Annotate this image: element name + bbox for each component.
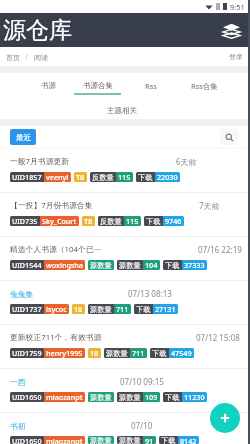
staticText: 07/12 15:08 [196,332,240,343]
staticText: UID1737 [12,304,42,314]
staticText: 47549 [171,348,192,358]
staticText: UID1650 [12,436,42,444]
staticText: 登录 [229,52,243,61]
staticText: 下载 [161,436,176,444]
staticText: 18 [90,348,99,358]
staticText: 源数量 [119,436,141,444]
staticText: 主题相关 [107,106,137,115]
staticText: 37333 [184,260,205,270]
button[interactable]: 书源 [22,73,74,98]
staticText: 更新校正711个，有效书源 [10,332,102,343]
staticText: 下载 [146,217,161,226]
staticText: 18 [74,304,83,314]
staticText: 阅读 [34,53,48,62]
staticText: UID1857 [12,172,42,182]
staticText: woxingsha [46,260,83,270]
button[interactable]: 【一投】7月份书源合集 [0,193,250,236]
staticText: 9:51 [230,2,245,12]
button[interactable]: 一般7月书源更新 [0,149,250,192]
staticText: 书初 [10,421,26,431]
staticText: T8 [76,172,85,182]
staticText: 下载 [152,349,167,358]
staticText: 115 [118,172,131,182]
staticText: 源数量 [90,305,112,314]
staticText: / [20,52,34,62]
staticText: UID1544 [12,260,42,270]
button[interactable]: 最近 [10,129,36,145]
staticText: 9746 [165,216,182,226]
staticText: 最近 [16,133,31,142]
button[interactable]: 更新校正711个，有效书源 [0,325,250,368]
staticText: 【一投】7月份书源合集 [10,200,93,211]
button[interactable]: Rss [125,73,177,98]
staticText: 下载 [138,173,153,182]
button[interactable]: Add [210,403,240,433]
button[interactable]: 一西 [0,369,250,412]
staticText: 兔兔集 [10,289,34,299]
staticText: 源数量 [90,261,112,270]
staticText: 07/16 22:19 [198,244,242,255]
button[interactable]: Rss合集 [178,73,230,98]
staticText: miaozanpt [46,436,83,444]
button[interactable]: 精选个人书源（104个已校选） [0,237,250,280]
button[interactable]: Search [220,129,238,145]
staticText: Rss [145,81,157,91]
staticText: 8142 [180,436,197,444]
staticText: 07/10 09:15 [120,376,164,387]
staticText: 6天前 [176,156,197,167]
button[interactable]: 书初 [0,413,250,444]
staticText: 反数量 [92,173,114,182]
staticText: 反数量 [100,217,122,226]
button[interactable]: 书源合集 [71,73,123,98]
staticText: henry1995 [46,348,83,358]
staticText: 源数量 [119,393,141,402]
staticText: Rss合集 [191,81,218,91]
staticText: 115 [126,216,139,226]
staticText: 一西 [10,377,26,387]
button[interactable]: Layers [221,20,241,40]
staticText: UID735 [12,216,38,226]
staticText: 精选个人书源（104个已校选） [10,244,104,255]
staticText: 一般7月书源更新 [10,156,70,167]
staticText: Sky_Court [42,216,77,226]
staticText: 源数量 [90,393,112,402]
staticText: 109 [145,392,158,402]
staticText: 711 [132,348,145,358]
staticText: 源数量 [106,349,128,358]
staticText: 07/10 [131,420,153,431]
staticText: 书源合集 [83,81,113,90]
staticText: 下载 [165,261,180,270]
staticText: T8 [84,216,93,226]
staticText: 104 [145,260,158,270]
staticText: 源数量 [90,436,112,444]
staticText: 书源 [41,81,56,90]
staticText: miaozanpt [46,392,83,402]
staticText: lsycoc [46,304,67,314]
staticText: 7天前 [199,200,220,211]
staticText: veenyl [46,172,69,182]
staticText: 首页 [6,53,20,62]
staticText: 27131 [155,304,176,314]
staticText: 下载 [165,393,180,402]
staticText: UID1650 [12,392,42,402]
staticText: 11230 [184,392,205,402]
staticText: 源数量 [119,261,141,270]
button[interactable]: 主题相关 [96,98,148,119]
staticText: 711 [116,304,129,314]
staticText: 07/13 08:13 [128,288,172,299]
staticText: 下载 [136,305,151,314]
staticText: 源仓库 [3,16,72,45]
button[interactable]: 兔兔集 [0,281,250,324]
staticText: 22030 [157,172,178,182]
staticText: 91 [145,436,154,444]
staticText: UID1759 [12,348,42,358]
